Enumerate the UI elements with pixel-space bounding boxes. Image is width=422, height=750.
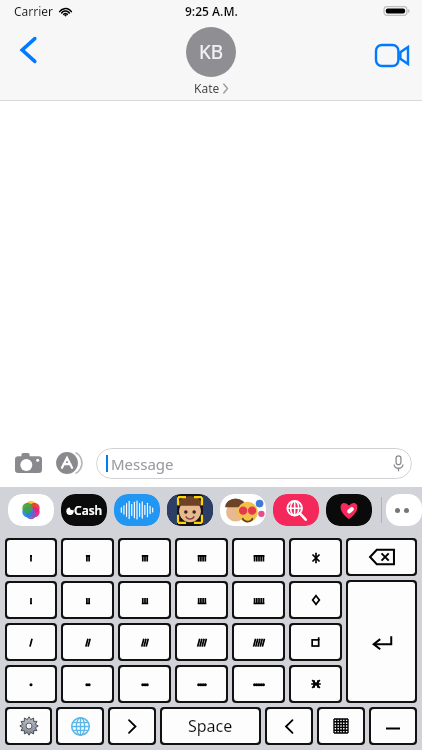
button[interactable] xyxy=(177,583,226,617)
staticText: KB xyxy=(199,39,224,65)
staticText: 9:25 A.M. xyxy=(185,3,238,19)
button[interactable]: More apps xyxy=(386,494,422,526)
button[interactable] xyxy=(120,625,169,659)
button[interactable] xyxy=(291,667,340,701)
button[interactable]: iMessage app xyxy=(273,494,319,526)
button[interactable]: FaceTime video call xyxy=(370,36,414,74)
button[interactable]: App Store xyxy=(52,445,88,481)
button[interactable]: Return xyxy=(348,582,415,701)
button[interactable] xyxy=(234,625,283,659)
staticText: Space xyxy=(188,715,233,737)
button[interactable]: iMessage app xyxy=(8,494,54,526)
button[interactable]: iMessage app xyxy=(61,494,107,526)
staticText: Cash xyxy=(74,502,103,518)
button[interactable]: Back xyxy=(6,28,50,72)
button[interactable] xyxy=(63,667,112,701)
button[interactable] xyxy=(120,583,169,617)
button[interactable]: Message xyxy=(96,448,412,479)
button[interactable] xyxy=(120,540,169,575)
button[interactable] xyxy=(177,667,226,701)
button[interactable] xyxy=(234,540,283,575)
button[interactable] xyxy=(7,667,55,701)
staticText: Carrier xyxy=(14,3,54,19)
button[interactable] xyxy=(7,625,55,659)
button[interactable]: Grid xyxy=(319,709,363,743)
button[interactable] xyxy=(63,540,112,575)
button[interactable] xyxy=(63,625,112,659)
button[interactable] xyxy=(291,540,340,575)
button[interactable]: iMessage app xyxy=(114,494,160,526)
staticText: Message xyxy=(111,454,174,474)
button[interactable] xyxy=(234,583,283,617)
button[interactable]: iMessage app xyxy=(326,494,372,526)
button[interactable]: Keyboard settings xyxy=(7,709,50,743)
button[interactable] xyxy=(120,667,169,701)
button[interactable] xyxy=(177,540,226,575)
button[interactable]: KB xyxy=(186,27,236,96)
button[interactable] xyxy=(291,625,340,659)
button[interactable]: Delete xyxy=(348,540,415,574)
button[interactable] xyxy=(291,583,340,617)
button[interactable]: iMessage app xyxy=(167,494,213,526)
button[interactable]: Back xyxy=(267,709,311,743)
button[interactable] xyxy=(63,583,112,617)
button[interactable]: Space xyxy=(162,709,259,743)
button[interactable]: Camera xyxy=(10,445,46,481)
button[interactable] xyxy=(234,667,283,701)
button[interactable]: iMessage app xyxy=(220,494,266,526)
button[interactable] xyxy=(177,625,226,659)
button[interactable] xyxy=(7,540,55,575)
button[interactable]: Underscore xyxy=(371,709,415,743)
staticText: Kate xyxy=(194,80,220,96)
button[interactable] xyxy=(7,583,55,617)
button[interactable]: Next keyboard xyxy=(58,709,102,743)
button[interactable]: Forward xyxy=(110,709,154,743)
